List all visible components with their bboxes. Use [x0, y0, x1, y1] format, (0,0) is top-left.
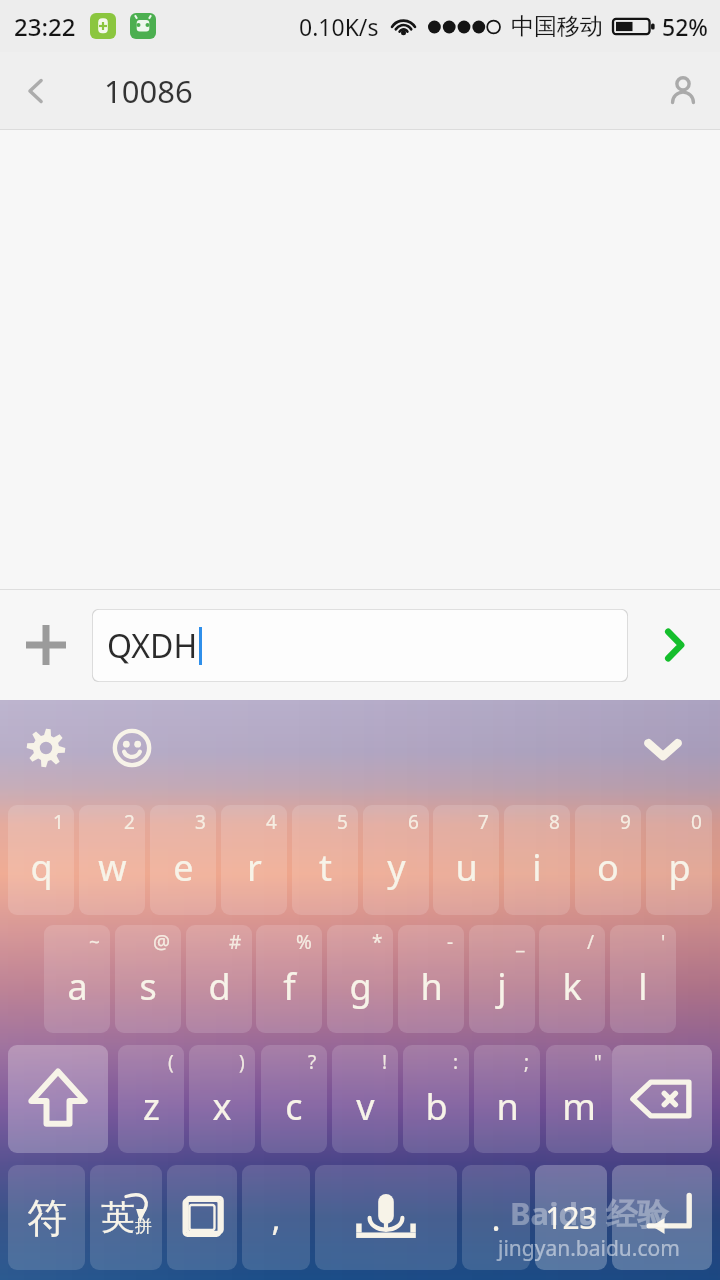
button[interactable]: 5	[292, 805, 358, 915]
staticText: 符	[27, 1193, 67, 1243]
staticText: x	[212, 1082, 232, 1131]
staticText: e	[173, 843, 194, 892]
staticText: z	[143, 1082, 160, 1131]
staticText: ,	[271, 1195, 281, 1241]
button[interactable]: _	[469, 925, 535, 1033]
button[interactable]: 8	[504, 805, 570, 915]
button[interactable]: Space / Voice input	[315, 1165, 457, 1270]
button[interactable]: Handwriting input	[167, 1165, 237, 1270]
button[interactable]: %	[256, 925, 322, 1033]
staticText: p	[668, 843, 691, 892]
button[interactable]: 7	[433, 805, 499, 915]
button[interactable]: :	[403, 1045, 469, 1153]
button[interactable]: ,	[242, 1165, 310, 1270]
button[interactable]: 123	[535, 1165, 607, 1270]
staticText: %	[296, 929, 312, 955]
staticText: ~	[89, 929, 100, 955]
button[interactable]: Hide keyboard	[634, 720, 692, 778]
staticText: 0	[691, 809, 702, 835]
staticText: h	[420, 962, 443, 1011]
button[interactable]: Send	[628, 590, 720, 700]
staticText: @	[153, 929, 171, 955]
button[interactable]: -	[398, 925, 464, 1033]
staticText: n	[496, 1082, 519, 1131]
button[interactable]: Backspace	[612, 1045, 712, 1153]
button[interactable]: 3	[150, 805, 216, 915]
staticText: c	[285, 1082, 303, 1131]
staticText: (	[168, 1049, 174, 1075]
staticText: 52%	[662, 11, 708, 42]
staticText: g	[349, 962, 372, 1011]
staticText: 7	[478, 809, 489, 835]
button[interactable]: @	[115, 925, 181, 1033]
button[interactable]: (	[118, 1045, 184, 1153]
staticText: '	[661, 929, 666, 955]
staticText: 中国移动	[511, 12, 603, 41]
staticText: *	[372, 929, 383, 955]
staticText: t	[319, 843, 332, 892]
button[interactable]: Add attachment	[0, 590, 92, 700]
staticText: w	[98, 843, 127, 892]
button[interactable]: Keyboard settings	[18, 720, 74, 776]
staticText: 英	[101, 1196, 135, 1239]
staticText: q	[30, 843, 53, 892]
button[interactable]: Enter	[612, 1165, 712, 1270]
button[interactable]: /	[539, 925, 605, 1033]
staticText: 0.10K/s	[299, 11, 379, 42]
staticText: "	[594, 1049, 602, 1075]
staticText: ;	[524, 1049, 530, 1075]
button[interactable]: ~	[44, 925, 110, 1033]
staticText: m	[562, 1082, 596, 1131]
button[interactable]: Back	[0, 55, 72, 127]
button[interactable]: !	[332, 1045, 398, 1153]
button[interactable]: 6	[363, 805, 429, 915]
button[interactable]: ;	[474, 1045, 540, 1153]
button[interactable]: Contact info	[646, 54, 720, 128]
button[interactable]: 9	[575, 805, 641, 915]
button[interactable]: *	[327, 925, 393, 1033]
button[interactable]: Emoji	[104, 720, 160, 776]
staticText: s	[139, 962, 157, 1011]
button[interactable]: "	[546, 1045, 612, 1153]
staticText: b	[425, 1082, 448, 1131]
staticText: r	[247, 843, 262, 892]
button[interactable]: 1	[8, 805, 74, 915]
staticText: ?	[308, 1049, 317, 1075]
staticText: 123	[545, 1197, 597, 1238]
staticText: k	[562, 962, 582, 1011]
staticText: 4	[266, 809, 277, 835]
button[interactable]: Shift	[8, 1045, 108, 1153]
staticText: )	[239, 1049, 245, 1075]
staticText: #	[229, 929, 242, 955]
button[interactable]: QXDH	[92, 609, 628, 682]
button[interactable]: 符	[8, 1165, 85, 1270]
staticText: f	[283, 962, 296, 1011]
staticText: d	[208, 962, 231, 1011]
button[interactable]: .	[462, 1165, 530, 1270]
staticText: l	[638, 962, 648, 1011]
staticText: u	[455, 843, 478, 892]
staticText: .	[491, 1195, 501, 1241]
button[interactable]: 0	[646, 805, 712, 915]
staticText: i	[532, 843, 542, 892]
staticText: !	[382, 1049, 388, 1075]
staticText: 3	[195, 809, 206, 835]
button[interactable]: Switch input language	[90, 1165, 162, 1270]
button[interactable]: )	[189, 1045, 255, 1153]
staticText: 9	[620, 809, 631, 835]
staticText: Baidu 经验	[510, 1192, 669, 1234]
staticText: 2	[124, 809, 135, 835]
staticText: /	[587, 929, 595, 955]
button[interactable]: 2	[79, 805, 145, 915]
button[interactable]: 4	[221, 805, 287, 915]
button[interactable]: '	[610, 925, 676, 1033]
staticText: 10086	[104, 70, 193, 112]
button[interactable]: ?	[261, 1045, 327, 1153]
staticText: a	[67, 962, 88, 1011]
staticText: :	[453, 1049, 459, 1075]
staticText: 23:22	[14, 10, 76, 43]
staticText: 1	[53, 809, 64, 835]
staticText: o	[597, 843, 619, 892]
button[interactable]: #	[186, 925, 252, 1033]
staticText: QXDH	[107, 624, 198, 668]
